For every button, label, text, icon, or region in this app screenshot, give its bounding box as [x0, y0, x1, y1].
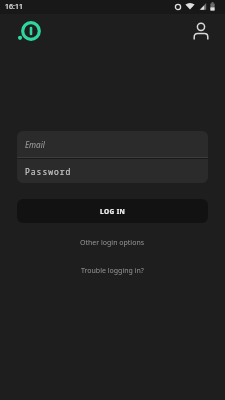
button[interactable]: Email	[17, 131, 208, 157]
staticText: Trouble logging in?	[81, 266, 144, 276]
button[interactable]: Other login options	[76, 234, 149, 252]
staticText: Password	[25, 166, 72, 177]
staticText: LOG IN	[100, 207, 126, 216]
button[interactable]: LOG IN	[17, 199, 208, 223]
button[interactable]: Password	[17, 159, 208, 183]
staticText: 16:11	[5, 2, 23, 12]
button[interactable]	[189, 19, 213, 43]
staticText: Other login options	[80, 238, 145, 248]
staticText: Email	[25, 139, 45, 150]
button[interactable]: Trouble logging in?	[77, 262, 148, 280]
